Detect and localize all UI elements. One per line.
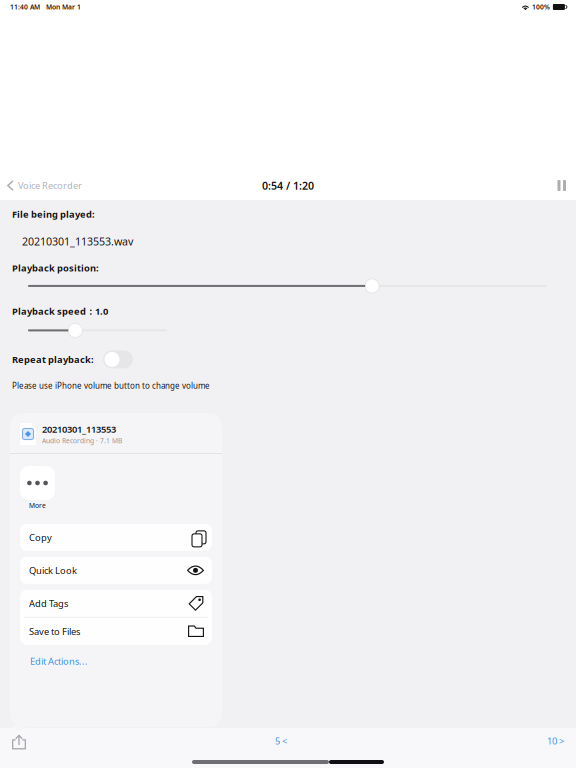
staticText: Playback speed：1.0 bbox=[12, 305, 108, 317]
button[interactable]: Copy bbox=[20, 524, 212, 551]
button[interactable]: 10 > bbox=[539, 728, 576, 754]
button[interactable]: Quick Look bbox=[20, 557, 212, 584]
staticText: Quick Look bbox=[29, 564, 77, 577]
staticText: 10 > bbox=[547, 735, 564, 747]
staticText: Audio Recording · 7.1 MB bbox=[42, 436, 122, 445]
staticText: Mon Mar 1 bbox=[46, 3, 81, 11]
staticText: Copy bbox=[29, 531, 52, 544]
staticText: 0:54 / 1:20 bbox=[262, 178, 314, 193]
button[interactable]: More bbox=[20, 466, 55, 510]
button[interactable]: Voice Recorder bbox=[0, 170, 89, 200]
staticText: Save to Files bbox=[29, 625, 80, 638]
staticText: Add Tags bbox=[29, 597, 68, 610]
staticText: File being played: bbox=[12, 208, 95, 220]
staticText: Edit Actions... bbox=[30, 655, 88, 667]
staticText: Playback position: bbox=[12, 262, 99, 274]
staticText: 5 < bbox=[275, 735, 287, 747]
staticText: 11:40 AM bbox=[10, 3, 40, 11]
staticText: More bbox=[29, 501, 46, 510]
button[interactable]: Save to Files bbox=[20, 618, 212, 645]
button[interactable]: Add Tags bbox=[20, 590, 212, 617]
button[interactable]: Share bbox=[0, 728, 36, 754]
staticText: Repeat playback: bbox=[12, 353, 94, 366]
staticText: Please use iPhone volume button to chang… bbox=[12, 380, 210, 391]
staticText: 20210301_113553 bbox=[42, 423, 116, 435]
staticText: 20210301_113553.wav bbox=[22, 234, 133, 249]
button[interactable]: 5 < bbox=[267, 728, 295, 754]
button[interactable]: Pause bbox=[547, 170, 576, 200]
staticText: Voice Recorder bbox=[18, 179, 82, 192]
staticText: 100% bbox=[532, 3, 550, 11]
button[interactable]: Edit Actions... bbox=[10, 650, 98, 672]
button[interactable]: Repeat playback bbox=[103, 350, 133, 368]
